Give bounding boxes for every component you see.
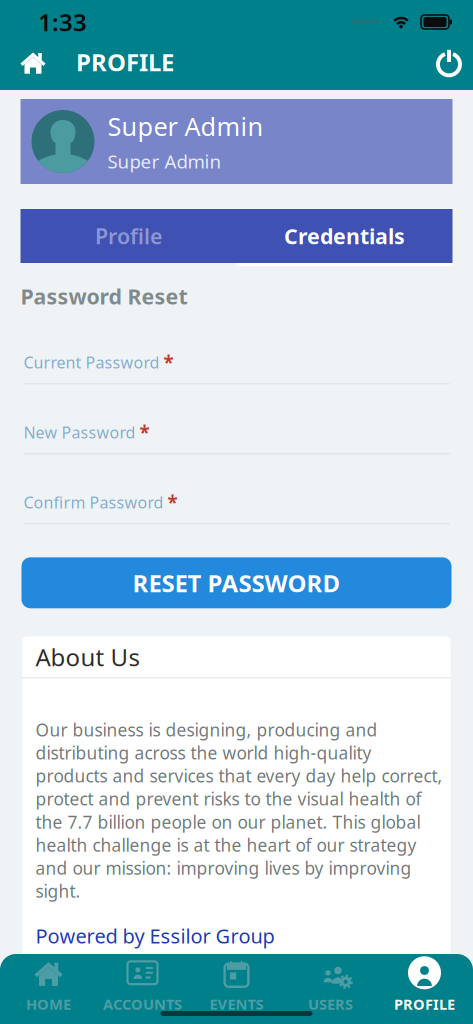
button[interactable]: Log out: [428, 40, 470, 84]
staticText: and our mission: improving lives by impr…: [35, 856, 411, 879]
staticText: Super Admin: [107, 149, 221, 174]
staticText: Profile: [95, 222, 162, 250]
button[interactable]: EVENTS: [189, 953, 283, 1017]
button[interactable]: ACCOUNTS: [95, 953, 189, 1017]
staticText: Powered by Essilor Group: [35, 922, 274, 949]
staticText: Credentials: [284, 222, 405, 250]
staticText: HOME: [26, 994, 71, 1014]
staticText: distributing across the world high-quali…: [35, 741, 371, 764]
staticText: *: [163, 350, 173, 375]
button[interactable]: RESET PASSWORD: [21, 557, 451, 608]
staticText: Password Reset: [20, 282, 187, 310]
button[interactable]: USERS: [283, 953, 377, 1017]
staticText: *: [167, 490, 177, 515]
staticText: Confirm Password: [23, 492, 163, 513]
staticText: RESET PASSWORD: [132, 567, 340, 599]
staticText: protect and prevent risks to the visual …: [35, 787, 421, 810]
staticText: Our business is designing, producing and: [35, 718, 377, 741]
staticText: About Us: [35, 641, 139, 673]
staticText: New Password: [23, 422, 135, 443]
button[interactable]: Powered by Essilor Group: [22, 902, 274, 975]
button[interactable]: Home: [12, 40, 54, 84]
staticText: EVENTS: [209, 994, 263, 1014]
button[interactable]: Profile: [20, 209, 236, 263]
staticText: 1:33: [38, 6, 87, 38]
staticText: PROFILE: [76, 46, 174, 78]
staticText: *: [139, 420, 149, 445]
button[interactable]: HOME: [1, 953, 95, 1017]
button[interactable]: PROFILE: [377, 953, 471, 1017]
staticText: sight.: [35, 879, 80, 902]
staticText: USERS: [308, 994, 353, 1014]
staticText: ACCOUNTS: [103, 994, 182, 1014]
staticText: the 7.7 billion people on our planet. Th…: [35, 810, 420, 833]
staticText: products and services that every day hel…: [35, 764, 442, 787]
staticText: Super Admin: [107, 109, 263, 143]
staticText: Current Password: [23, 352, 159, 373]
button[interactable]: Credentials: [236, 209, 452, 263]
staticText: health challenge is at the heart of our …: [35, 833, 416, 856]
staticText: PROFILE: [394, 994, 455, 1014]
